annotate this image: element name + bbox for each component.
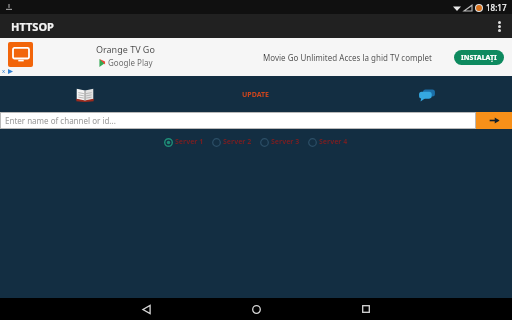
staticText: INSTALAȚI	[461, 53, 497, 63]
button[interactable]: Search	[476, 112, 512, 129]
button[interactable]: INSTALAȚI	[454, 50, 504, 65]
button[interactable]: Home	[201, 298, 311, 320]
button[interactable]: Guide	[0, 83, 170, 107]
button[interactable]: Server 4	[307, 136, 349, 148]
button[interactable]: Back	[91, 298, 201, 320]
button[interactable]: Server 1	[163, 136, 205, 148]
button[interactable]: Server 3	[259, 136, 301, 148]
button[interactable]: Update	[170, 83, 341, 107]
staticText: Enter name of channel or id...	[5, 115, 116, 126]
staticText: Server 3	[271, 137, 300, 147]
staticText: Server 4	[319, 137, 348, 147]
button[interactable]: Server 2	[211, 136, 253, 148]
staticText: Server 2	[223, 137, 252, 147]
button[interactable]: x	[0, 38, 512, 76]
staticText: HTTSOP	[11, 19, 54, 34]
button[interactable]: Chat	[341, 83, 512, 107]
staticText: Server 1	[175, 137, 204, 147]
staticText: x	[2, 67, 6, 75]
staticText: Google Play	[108, 57, 153, 68]
button[interactable]: Enter name of channel or id...	[0, 112, 476, 129]
button[interactable]: Recent apps	[311, 298, 421, 320]
staticText: 18:17	[486, 2, 507, 13]
button[interactable]: More options	[486, 14, 512, 38]
staticText: Orange TV Go	[96, 43, 155, 55]
staticText: UPDATE	[242, 90, 269, 100]
staticText: Movie Go Unlimited Acces la ghid TV comp…	[263, 52, 432, 63]
